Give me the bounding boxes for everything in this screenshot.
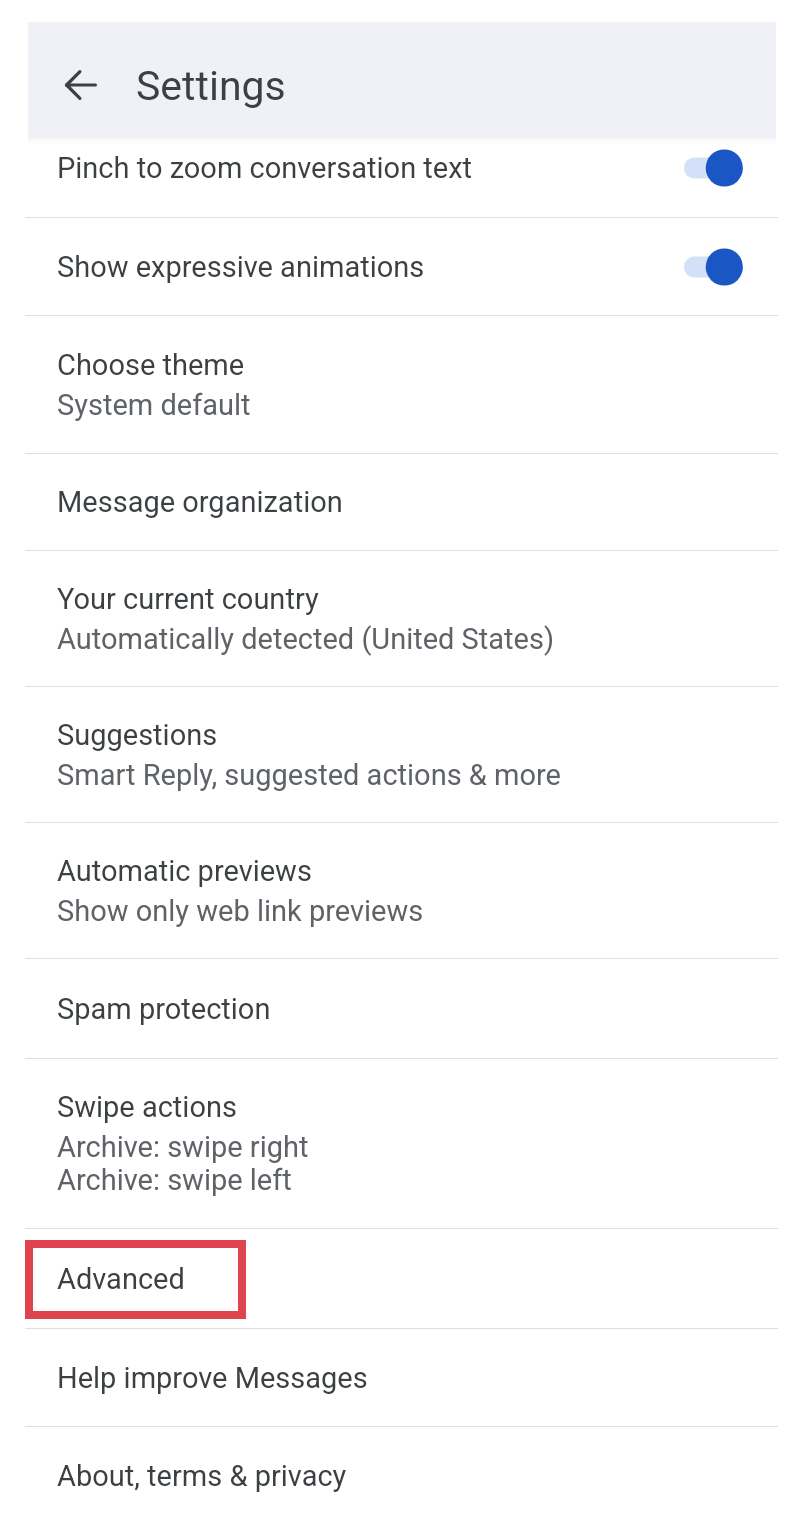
button[interactable]: Show expressive animations bbox=[0, 218, 799, 315]
staticText: Automatic previews bbox=[57, 854, 312, 888]
button[interactable]: Show expressive animations, on bbox=[683, 246, 757, 288]
button[interactable]: Pinch to zoom conversation text bbox=[0, 119, 799, 217]
button[interactable]: Your current country bbox=[0, 551, 799, 686]
button[interactable]: Advanced bbox=[0, 1229, 799, 1328]
staticText: Archive: swipe right Archive: swipe left bbox=[57, 1130, 309, 1197]
button[interactable]: Swipe actions bbox=[0, 1059, 799, 1228]
staticText: Show expressive animations bbox=[57, 250, 425, 284]
staticText: Spam protection bbox=[57, 992, 271, 1026]
button[interactable]: Back bbox=[50, 54, 112, 116]
staticText: System default bbox=[57, 388, 251, 422]
button[interactable]: Message organization bbox=[0, 454, 799, 550]
button[interactable]: Help improve Messages bbox=[0, 1329, 799, 1426]
staticText: Smart Reply, suggested actions & more bbox=[57, 758, 561, 792]
staticText: Pinch to zoom conversation text bbox=[57, 151, 473, 185]
staticText: Advanced bbox=[57, 1262, 185, 1296]
staticText: About, terms & privacy bbox=[57, 1459, 347, 1493]
button[interactable]: Spam protection bbox=[0, 959, 799, 1058]
button[interactable]: Pinch to zoom conversation text, on bbox=[683, 147, 757, 189]
staticText: Message organization bbox=[57, 485, 343, 519]
staticText: Show only web link previews bbox=[57, 894, 424, 928]
staticText: Automatically detected (United States) bbox=[57, 622, 555, 656]
button[interactable]: Automatic previews bbox=[0, 823, 799, 958]
staticText: Suggestions bbox=[57, 718, 218, 752]
staticText: Your current country bbox=[57, 582, 319, 616]
staticText: Choose theme bbox=[57, 348, 245, 382]
staticText: Swipe actions bbox=[57, 1090, 237, 1124]
button[interactable]: About, terms & privacy bbox=[0, 1427, 799, 1524]
staticText: Help improve Messages bbox=[57, 1361, 368, 1395]
button[interactable]: Suggestions bbox=[0, 687, 799, 822]
staticText: Settings bbox=[136, 62, 286, 110]
button[interactable]: Choose theme bbox=[0, 316, 799, 453]
